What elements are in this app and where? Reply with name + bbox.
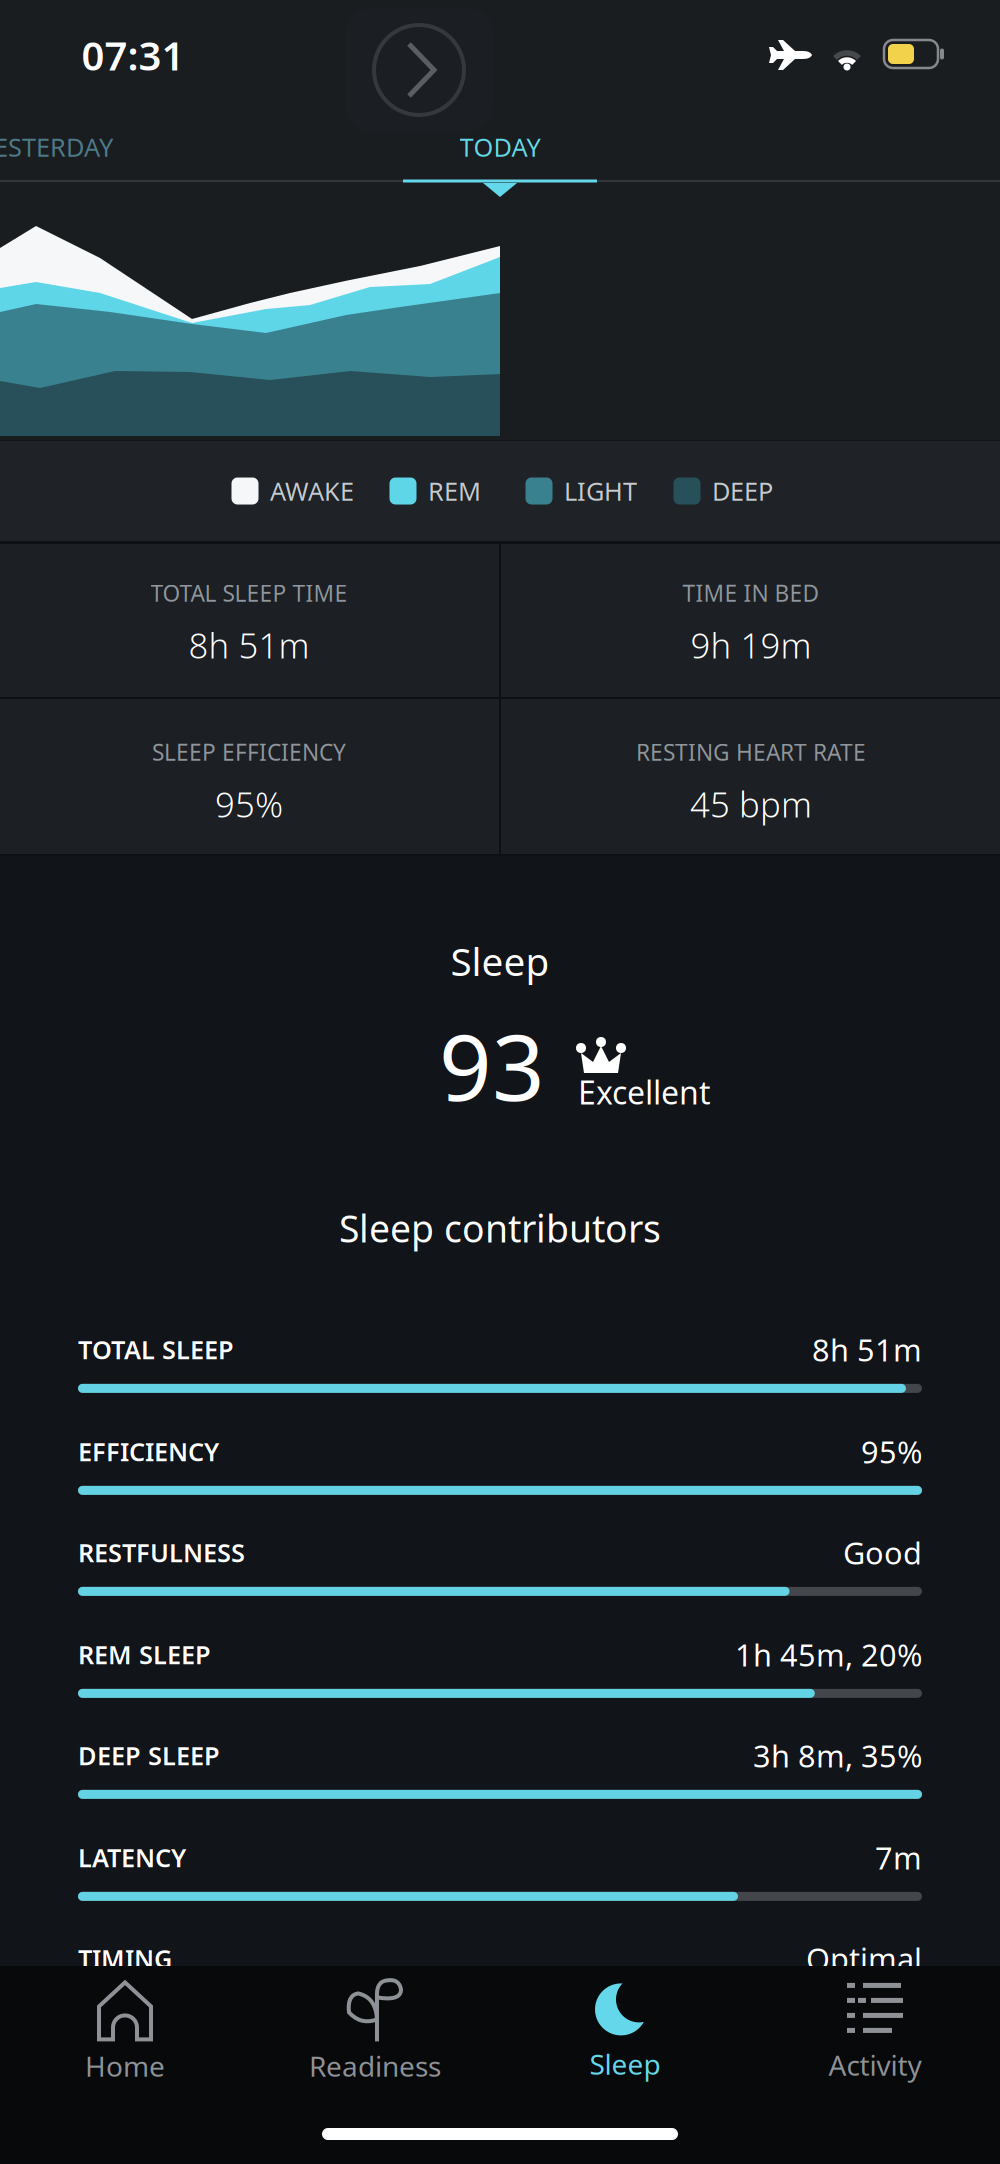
- staticText: Home: [85, 2047, 165, 2085]
- staticText: Excellent: [578, 1071, 711, 1113]
- button[interactable]: Home: [5, 1968, 245, 2096]
- staticText: 95%: [861, 1431, 922, 1472]
- staticText: 8h 51m: [188, 622, 309, 668]
- staticText: RESTING HEART RATE: [636, 737, 866, 767]
- staticText: DEEP: [712, 474, 773, 508]
- staticText: AWAKE: [270, 474, 354, 508]
- staticText: TIME IN BED: [682, 578, 819, 608]
- staticText: Sleep: [450, 935, 549, 987]
- staticText: LIGHT: [564, 474, 637, 508]
- staticText: YESTERDAY: [0, 130, 113, 164]
- staticText: SLEEP EFFICIENCY: [152, 737, 346, 767]
- button[interactable]: Activity: [755, 1968, 995, 2096]
- staticText: REM SLEEP: [78, 1638, 211, 1671]
- staticText: LATENCY: [78, 1841, 186, 1874]
- staticText: DEEP SLEEP: [78, 1739, 220, 1772]
- staticText: REM: [428, 474, 481, 508]
- staticText: Sleep: [589, 2045, 660, 2083]
- staticText: 45 bpm: [690, 781, 812, 827]
- button[interactable]: Next day: [345, 8, 493, 132]
- button[interactable]: Readiness: [255, 1968, 495, 2096]
- staticText: TOTAL SLEEP: [78, 1333, 234, 1366]
- staticText: 95%: [215, 781, 283, 827]
- staticText: 7m: [875, 1837, 922, 1878]
- staticText: Sleep contributors: [339, 1203, 661, 1253]
- staticText: TODAY: [459, 130, 540, 164]
- button[interactable]: Sleep: [505, 1968, 745, 2096]
- staticText: 3h 8m, 35%: [753, 1735, 922, 1776]
- button[interactable]: TODAY: [403, 119, 597, 175]
- staticText: Activity: [828, 2046, 921, 2084]
- staticText: 93: [439, 1004, 545, 1126]
- button[interactable]: YESTERDAY: [0, 130, 300, 164]
- staticText: TOTAL SLEEP TIME: [150, 578, 347, 608]
- staticText: TIMING: [78, 1942, 172, 1975]
- staticText: 1h 45m, 20%: [735, 1634, 922, 1675]
- staticText: Good: [843, 1532, 922, 1573]
- staticText: Optimal: [806, 1938, 922, 1979]
- staticText: EFFICIENCY: [78, 1435, 219, 1468]
- staticText: 9h 19m: [690, 622, 811, 668]
- staticText: 07:31: [81, 28, 184, 81]
- staticText: Readiness: [309, 2047, 441, 2085]
- staticText: 8h 51m: [812, 1329, 922, 1370]
- staticText: RESTFULNESS: [78, 1536, 245, 1569]
